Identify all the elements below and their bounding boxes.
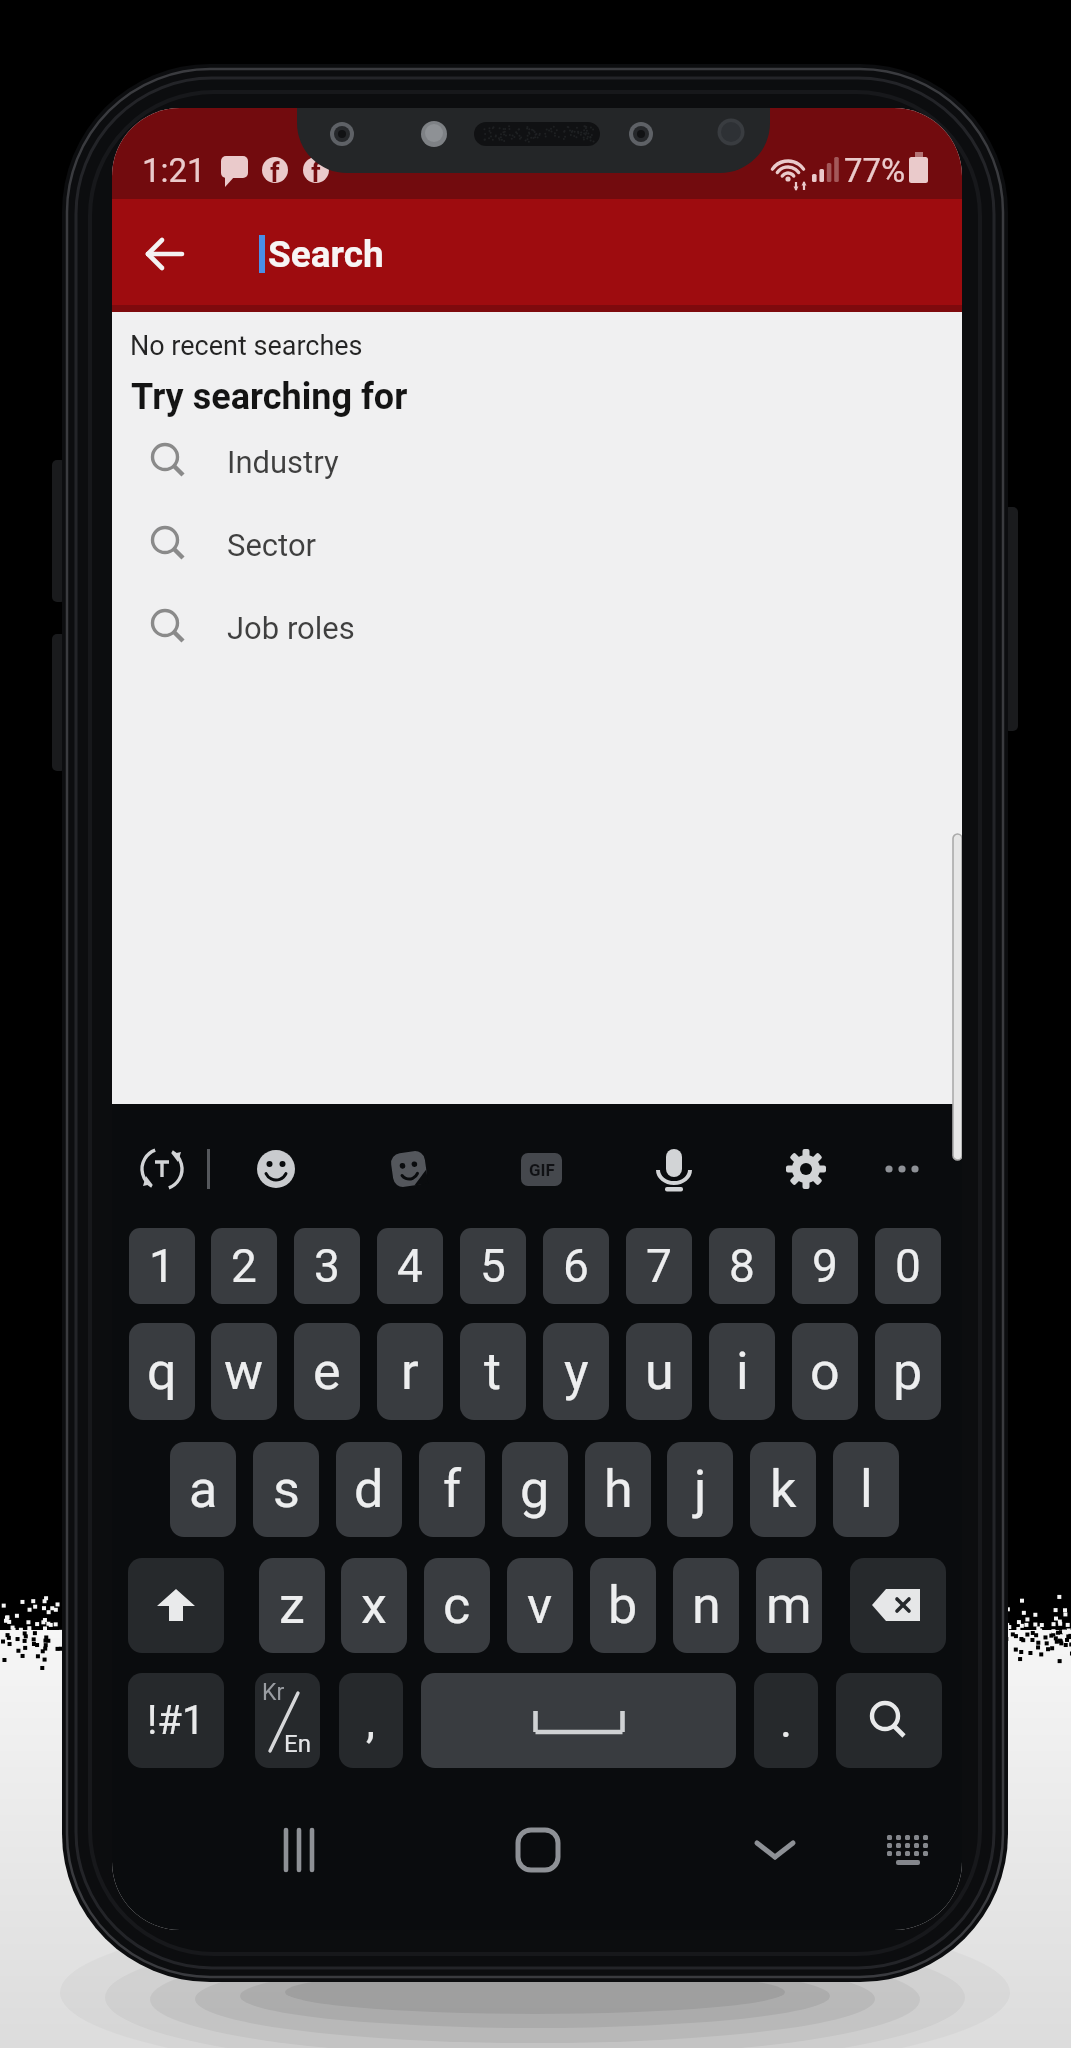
button[interactable]: 0 xyxy=(875,1228,941,1304)
button[interactable]: 2 xyxy=(211,1228,277,1304)
button[interactable]: m xyxy=(756,1558,822,1653)
button[interactable]: o xyxy=(792,1323,858,1420)
staticText: 0 xyxy=(895,1239,921,1293)
staticText: q xyxy=(147,1341,177,1402)
button[interactable]: w xyxy=(211,1323,277,1420)
staticText: !#1 xyxy=(147,1697,205,1744)
button[interactable]: t xyxy=(460,1323,526,1420)
staticText: GIF xyxy=(529,1160,555,1180)
button[interactable]: c xyxy=(424,1558,490,1653)
button[interactable]: z xyxy=(259,1558,325,1653)
button[interactable]: 5 xyxy=(460,1228,526,1304)
staticText: Industry xyxy=(227,444,339,480)
button[interactable]: Kr xyxy=(255,1673,320,1768)
button[interactable]: d xyxy=(336,1442,402,1537)
button[interactable]: h xyxy=(585,1442,651,1537)
button[interactable]: q xyxy=(129,1323,195,1420)
staticText: No recent searches xyxy=(130,330,363,362)
staticText: 8 xyxy=(729,1239,755,1293)
button[interactable] xyxy=(421,1673,736,1768)
staticText: , xyxy=(366,1694,376,1748)
staticText: o xyxy=(810,1341,840,1402)
staticText: 4 xyxy=(397,1239,423,1293)
button[interactable]: a xyxy=(170,1442,236,1537)
button[interactable] xyxy=(134,1141,190,1197)
button[interactable] xyxy=(248,1141,304,1197)
staticText: t xyxy=(484,1341,502,1402)
button[interactable]: Job roles xyxy=(112,586,962,669)
button[interactable]: 1 xyxy=(129,1228,195,1304)
staticText: k xyxy=(770,1459,797,1520)
button[interactable]: l xyxy=(833,1442,899,1537)
staticText: 2 xyxy=(231,1239,257,1293)
button[interactable]: !#1 xyxy=(128,1673,224,1768)
staticText: w xyxy=(224,1341,264,1402)
staticText: Search xyxy=(268,233,384,276)
staticText: h xyxy=(604,1459,633,1520)
button[interactable]: 3 xyxy=(294,1228,360,1304)
staticText: g xyxy=(520,1459,550,1520)
button[interactable]: v xyxy=(507,1558,573,1653)
button[interactable]: i xyxy=(709,1323,775,1420)
button[interactable] xyxy=(132,221,198,287)
button[interactable]: j xyxy=(667,1442,733,1537)
staticText: d xyxy=(354,1459,384,1520)
button[interactable]: n xyxy=(673,1558,739,1653)
staticText: z xyxy=(279,1575,305,1636)
staticText: n xyxy=(692,1575,721,1636)
button[interactable] xyxy=(778,1141,834,1197)
staticText: 3 xyxy=(314,1239,340,1293)
staticText: Sector xyxy=(227,527,317,563)
button[interactable]: GIF xyxy=(521,1153,562,1186)
staticText: 1 xyxy=(149,1239,175,1293)
staticText: 1:21 xyxy=(142,151,206,190)
button[interactable]: s xyxy=(253,1442,319,1537)
button[interactable]: p xyxy=(875,1323,941,1420)
button[interactable]: g xyxy=(502,1442,568,1537)
button[interactable]: e xyxy=(294,1323,360,1420)
button[interactable]: 8 xyxy=(709,1228,775,1304)
button[interactable]: Sector xyxy=(112,503,962,586)
button[interactable]: r xyxy=(377,1323,443,1420)
staticText: Job roles xyxy=(227,610,355,646)
button[interactable]: y xyxy=(543,1323,609,1420)
button[interactable] xyxy=(260,1810,340,1890)
button[interactable] xyxy=(498,1810,578,1890)
staticText: y xyxy=(564,1341,589,1402)
staticText: i xyxy=(736,1341,749,1402)
staticText: f xyxy=(311,157,321,183)
button[interactable]: . xyxy=(754,1673,818,1768)
button[interactable] xyxy=(850,1558,946,1653)
button[interactable] xyxy=(878,1824,938,1876)
staticText: 77% xyxy=(844,151,906,190)
staticText: e xyxy=(313,1341,341,1402)
button[interactable] xyxy=(836,1673,942,1768)
button[interactable]: b xyxy=(590,1558,656,1653)
staticText: j xyxy=(694,1459,707,1520)
button[interactable]: 6 xyxy=(543,1228,609,1304)
staticText: f xyxy=(270,157,280,183)
button[interactable]: 9 xyxy=(792,1228,858,1304)
staticText: 9 xyxy=(812,1239,838,1293)
staticText: . xyxy=(780,1694,793,1748)
button[interactable]: 4 xyxy=(377,1228,443,1304)
button[interactable]: 7 xyxy=(626,1228,692,1304)
button[interactable] xyxy=(883,1162,931,1176)
button[interactable] xyxy=(128,1558,224,1653)
button[interactable]: f xyxy=(419,1442,485,1537)
button[interactable]: , xyxy=(339,1673,403,1768)
button[interactable]: x xyxy=(341,1558,407,1653)
staticText: Try searching for xyxy=(131,376,408,418)
button[interactable] xyxy=(735,1810,815,1890)
button[interactable] xyxy=(381,1141,437,1197)
staticText: l xyxy=(860,1459,873,1520)
staticText: a xyxy=(189,1459,218,1520)
staticText: 7 xyxy=(646,1239,672,1293)
staticText: x xyxy=(361,1575,387,1636)
button[interactable]: u xyxy=(626,1323,692,1420)
staticText: En xyxy=(284,1730,311,1758)
button[interactable]: k xyxy=(750,1442,816,1537)
button[interactable] xyxy=(646,1141,702,1197)
button[interactable]: Industry xyxy=(112,420,962,503)
staticText: r xyxy=(401,1341,419,1402)
